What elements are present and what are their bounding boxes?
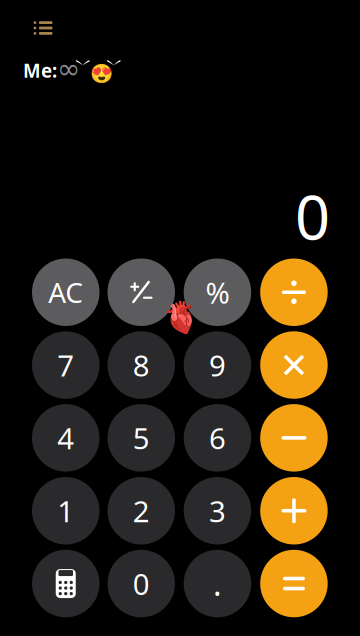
button[interactable]: Plus xyxy=(260,477,328,544)
staticText: 1 xyxy=(57,491,74,530)
button[interactable]: 9 xyxy=(184,331,251,399)
button[interactable]: 6 xyxy=(184,404,251,472)
button[interactable]: 2 xyxy=(107,477,175,544)
button[interactable]: Menu xyxy=(30,16,56,40)
staticText: . xyxy=(213,562,222,605)
staticText: AC xyxy=(48,274,83,311)
staticText: 9 xyxy=(209,346,226,385)
staticText: 8 xyxy=(133,346,150,385)
staticText: 0 xyxy=(295,175,330,257)
button[interactable]: Equals xyxy=(260,550,328,617)
staticText: 3 xyxy=(209,491,226,530)
staticText: 0 xyxy=(133,564,150,603)
button[interactable]: 4 xyxy=(32,404,99,472)
staticText: 2 xyxy=(133,491,150,530)
button[interactable]: 0 xyxy=(107,550,175,617)
staticText: % xyxy=(205,273,229,312)
button[interactable]: 7 xyxy=(32,331,99,399)
staticText: 6 xyxy=(209,418,226,457)
staticText: 7 xyxy=(57,346,74,385)
button[interactable]: Plus minus xyxy=(107,258,175,326)
staticText: 5 xyxy=(133,418,150,457)
button[interactable]: AC xyxy=(32,258,99,326)
button[interactable]: Divide xyxy=(260,258,328,326)
staticText: Me: xyxy=(23,58,57,83)
button[interactable]: 5 xyxy=(107,404,175,472)
button[interactable]: 8 xyxy=(107,331,175,399)
button[interactable]: 3 xyxy=(184,477,251,544)
button[interactable]: Calculator xyxy=(32,550,99,617)
staticText: 😍 xyxy=(90,63,113,84)
staticText: 🫀 xyxy=(161,300,199,335)
staticText: ∞ xyxy=(57,53,80,85)
staticText: 4 xyxy=(57,418,74,457)
button[interactable]: . xyxy=(184,550,251,617)
button[interactable]: % xyxy=(184,258,251,326)
button[interactable]: Multiply xyxy=(260,331,328,399)
button[interactable]: Minus xyxy=(260,404,328,472)
button[interactable]: 1 xyxy=(32,477,99,544)
